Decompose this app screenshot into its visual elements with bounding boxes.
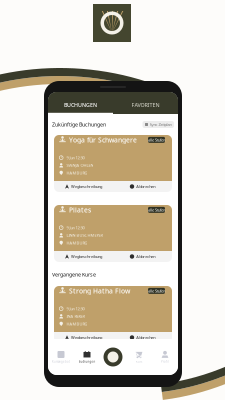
button[interactable]: Wegbeschreibung <box>54 181 113 192</box>
staticText: HAMBURG <box>66 240 87 245</box>
button[interactable]: Abbrechen <box>113 181 172 192</box>
staticText: Pilates <box>69 205 91 214</box>
staticText: SVENJA OHLEN <box>66 163 93 168</box>
staticText: HAMBURG <box>66 321 87 326</box>
staticText: Vergangene Kurse <box>52 271 96 278</box>
staticText: Buchungen <box>78 360 95 363</box>
staticText: alle Stufen <box>148 207 165 212</box>
staticText: Abbrechen <box>136 184 155 189</box>
staticText: 9 Jun 12:30 <box>66 306 84 311</box>
staticText: Profil <box>161 360 169 363</box>
staticText: Zukünftige Buchungen <box>52 121 106 128</box>
button[interactable]: Kurs <box>126 343 152 371</box>
staticText: Kurs <box>136 360 142 363</box>
staticText: Strong Hatha Flow <box>69 286 130 295</box>
button[interactable]: Startseite <box>100 343 126 371</box>
button[interactable]: Abbrechen <box>113 332 172 343</box>
button[interactable]: Wegbeschreibung <box>54 332 113 343</box>
button[interactable]: FAVORITEN <box>113 92 178 114</box>
staticText: Sync Zeitplan <box>149 122 171 127</box>
button[interactable]: Kursangebot <box>48 343 74 371</box>
button[interactable]: Buchungen <box>74 343 100 371</box>
staticText: BUCHUNGEN <box>64 101 97 109</box>
staticText: Abbrechen <box>136 254 155 259</box>
button[interactable]: Wegbeschreibung <box>54 251 113 262</box>
staticText: LINN BUSCHMEYER <box>66 233 102 238</box>
button[interactable]: alle Stufen <box>148 137 165 143</box>
staticText: Wegbeschreibung <box>71 184 102 189</box>
button[interactable]: alle Stufen <box>148 207 165 213</box>
staticText: HAMBURG <box>66 170 87 175</box>
button[interactable]: alle Stufen <box>148 288 165 294</box>
staticText: 9 Jun 12:30 <box>66 225 84 230</box>
staticText: Kursangebot <box>52 360 70 363</box>
staticText: Wegbeschreibung <box>71 254 102 259</box>
staticText: Abbrechen <box>136 335 155 340</box>
button[interactable]: BUCHUNGEN <box>48 92 113 114</box>
staticText: Wegbeschreibung <box>71 335 102 340</box>
button[interactable]: Abbrechen <box>113 251 172 262</box>
staticText: INA REKER <box>66 314 84 319</box>
button[interactable]: Sync Zeitplan <box>142 121 174 128</box>
button[interactable]: Profil <box>152 343 178 371</box>
staticText: 9 Jun 12:30 <box>66 155 84 160</box>
staticText: alle Stufen <box>148 137 165 142</box>
staticText: Yoga für Schwangere <box>69 135 137 144</box>
staticText: FAVORITEN <box>131 101 159 109</box>
staticText: alle Stufen <box>148 288 165 293</box>
